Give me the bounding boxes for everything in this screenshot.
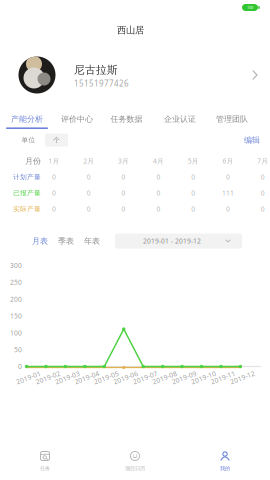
staticText: 2019-12 — [229, 373, 255, 382]
staticText: 2019-11 — [210, 373, 236, 382]
staticText: 0 — [261, 189, 265, 197]
staticText: 2019-09 — [171, 373, 197, 382]
staticText: 尼古拉斯 — [74, 63, 118, 76]
staticText: 111 — [222, 189, 234, 197]
staticText: 6月 — [222, 157, 233, 165]
staticText: 15151977426 — [74, 78, 129, 89]
staticText: 0 — [52, 189, 56, 197]
staticText: 0 — [122, 173, 126, 181]
staticText: 已报产量 — [13, 189, 41, 197]
staticText: 0 — [156, 189, 160, 197]
staticText: 0 — [87, 205, 91, 213]
staticText: 0 — [191, 189, 195, 197]
staticText: 150 — [10, 311, 22, 320]
staticText: 个 — [53, 136, 60, 144]
staticText: 月份 — [25, 156, 41, 166]
staticText: 50 — [14, 345, 22, 354]
staticText: 0 — [52, 205, 56, 213]
button[interactable]: 尼古拉斯 — [0, 49, 270, 101]
button[interactable]: 2019-01 - 2019-12 — [115, 233, 242, 248]
staticText: 0 — [87, 189, 91, 197]
button[interactable]: 评价中心 — [53, 107, 101, 129]
staticText: 年表 — [84, 236, 100, 246]
staticText: 季表 — [58, 236, 74, 246]
staticText: 2019-10 — [190, 373, 216, 382]
staticText: 4月 — [153, 157, 164, 165]
staticText: 编辑 — [244, 135, 260, 145]
staticText: 0 — [87, 173, 91, 181]
button[interactable]: 我的 — [180, 440, 270, 480]
staticText: 2019-03 — [54, 373, 80, 382]
staticText: 200 — [10, 295, 22, 304]
staticText: 0 — [261, 205, 265, 213]
staticText: 西山居 — [117, 24, 144, 36]
staticText: 单位 — [21, 136, 35, 144]
staticText: 7月 — [257, 157, 268, 165]
staticText: 0 — [18, 362, 22, 371]
staticText: 产能分析 — [11, 114, 43, 124]
staticText: 0 — [52, 173, 56, 181]
button[interactable]: 项目日历 — [90, 440, 180, 480]
button[interactable]: 月表 — [30, 234, 50, 248]
staticText: 100 — [247, 5, 253, 10]
staticText: 0 — [156, 205, 160, 213]
button[interactable]: 管理团队 — [208, 107, 256, 129]
button[interactable]: 编辑 — [239, 132, 265, 148]
staticText: 0 — [156, 173, 160, 181]
staticText: 1月 — [48, 157, 59, 165]
button[interactable]: 产能分析 — [3, 107, 51, 129]
staticText: 2019-06 — [113, 373, 139, 382]
button[interactable]: 企业认证 — [156, 107, 204, 129]
staticText: 0 — [191, 205, 195, 213]
staticText: 任务数据 — [110, 114, 142, 124]
button[interactable]: 季表 — [56, 234, 76, 248]
staticText: 0 — [191, 173, 195, 181]
staticText: 3月 — [118, 157, 129, 165]
staticText: 0 — [122, 205, 126, 213]
button[interactable]: 任务数据 — [102, 107, 150, 129]
staticText: 250 — [10, 278, 22, 287]
staticText: 2019-02 — [35, 373, 61, 382]
staticText: 项目日历 — [125, 465, 145, 472]
staticText: 0 — [261, 173, 265, 181]
staticText: 任务 — [40, 465, 50, 472]
staticText: 我的 — [220, 465, 230, 472]
staticText: 0 — [226, 173, 230, 181]
staticText: 0 — [226, 205, 230, 213]
staticText: 2019-08 — [152, 373, 178, 382]
staticText: 2019-05 — [93, 373, 119, 382]
staticText: 计划产量 — [13, 173, 41, 181]
staticText: 2019-07 — [132, 373, 158, 382]
staticText: 100 — [10, 328, 22, 337]
staticText: 2019-01 - 2019-12 — [143, 237, 201, 245]
staticText: 5月 — [188, 157, 199, 165]
staticText: 企业认证 — [164, 114, 196, 124]
button[interactable]: 年表 — [82, 234, 102, 248]
staticText: 0 — [122, 189, 126, 197]
staticText: 2019-04 — [74, 373, 100, 382]
staticText: 月表 — [32, 236, 48, 246]
staticText: 300 — [10, 261, 22, 270]
staticText: 2月 — [83, 157, 94, 165]
staticText: 实际产量 — [13, 205, 41, 213]
staticText: 评价中心 — [61, 114, 93, 124]
staticText: 2019-01 — [15, 373, 41, 382]
button[interactable]: 任务 — [0, 440, 90, 480]
staticText: 管理团队 — [216, 114, 248, 124]
